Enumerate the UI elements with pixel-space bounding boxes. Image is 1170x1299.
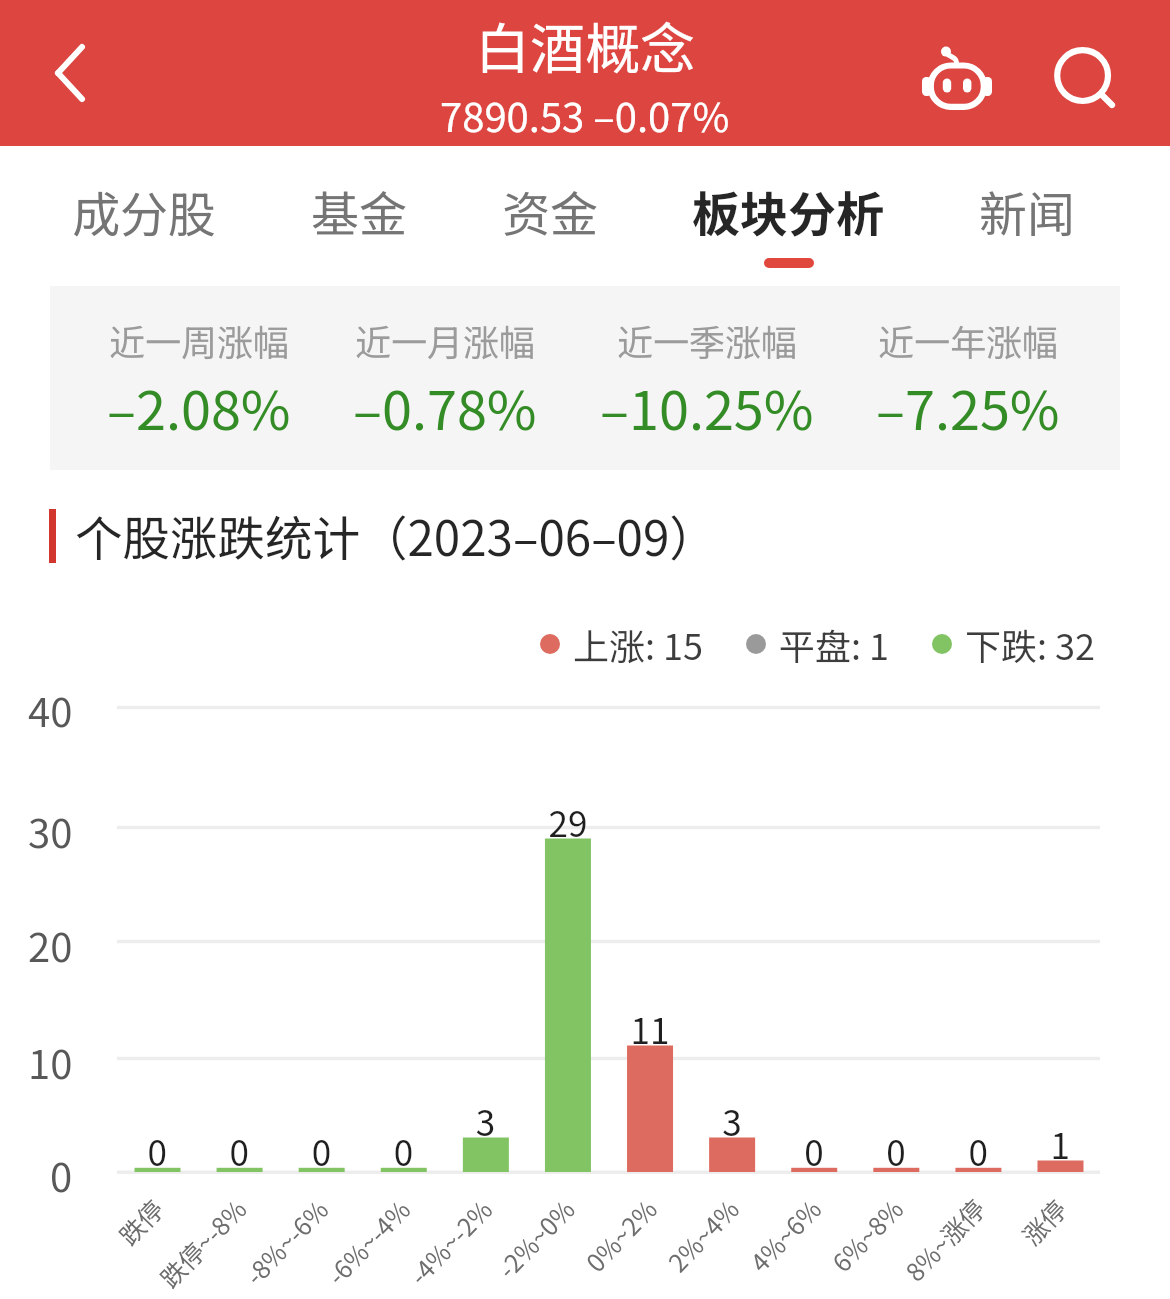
staticText: 下跌: 32	[965, 618, 1096, 670]
staticText: 近一季涨幅	[617, 314, 798, 366]
staticText: 资金	[502, 176, 599, 246]
staticText: –2.08%	[107, 367, 291, 445]
staticText: 近一年涨幅	[878, 314, 1059, 366]
staticText: 板块分析	[692, 176, 885, 246]
staticText: 个股涨跌统计（2023–06–09）	[75, 501, 717, 570]
staticText: 基金	[311, 176, 408, 246]
button[interactable]: AI assistant	[897, 12, 1017, 146]
staticText: –7.25%	[876, 367, 1060, 445]
staticText: 近一周涨幅	[109, 314, 290, 366]
staticText: 白酒概念	[475, 5, 696, 85]
staticText: 近一月涨幅	[355, 314, 536, 366]
staticText: 上涨: 15	[573, 618, 704, 670]
button[interactable]: 板块分析	[692, 146, 885, 286]
button[interactable]: 基金	[311, 146, 408, 286]
staticText: –10.25%	[600, 367, 814, 445]
staticText: –0.78%	[353, 367, 537, 445]
button[interactable]: Search	[1026, 12, 1146, 146]
staticText: 成分股	[72, 176, 217, 246]
button[interactable]: 成分股	[72, 146, 217, 286]
button[interactable]: Back	[10, 6, 130, 140]
staticText: 新闻	[979, 176, 1076, 246]
button[interactable]: 新闻	[979, 146, 1076, 286]
staticText: 7890.53 –0.07%	[440, 86, 730, 144]
staticText: 平盘: 1	[779, 618, 890, 670]
button[interactable]: 资金	[502, 146, 599, 286]
